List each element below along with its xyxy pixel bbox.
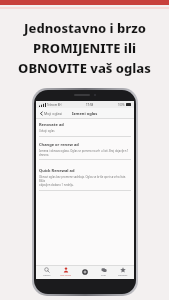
button[interactable]: Chat [94, 265, 113, 279]
staticText: OBNOVITE vaš oglas [18, 59, 151, 77]
staticText: Traženi [43, 274, 51, 277]
staticText: Omiljeno [118, 274, 128, 277]
staticText: Chat [101, 274, 106, 277]
staticText: Obnovi oglas bez promene sadržaja. Oglas… [39, 175, 131, 182]
button[interactable]: Search [38, 265, 56, 279]
staticText: 17:58 [86, 103, 94, 107]
button[interactable]: Change or renew ad [36, 139, 134, 162]
button[interactable]: Renovate ad [36, 119, 134, 139]
button[interactable]: Moji oglasi [39, 110, 64, 117]
staticText: Change or renew ad [39, 142, 79, 147]
staticText: Moji oglasi [60, 274, 72, 277]
staticText: Udvoji oglas [39, 129, 55, 133]
staticText: Renovate ad [39, 122, 64, 127]
staticText: Izmena i obnova oglasa. Oglas se pomera … [39, 149, 131, 156]
staticText: Moji oglasi [44, 111, 63, 116]
staticText: objavljen dodano 1 nedelju. [39, 183, 74, 187]
button[interactable]: Post ad [75, 265, 94, 279]
button[interactable]: Quick Renewal ad [36, 165, 134, 193]
staticText: 100% [118, 103, 125, 107]
staticText: Telecom BH [47, 103, 62, 107]
staticText: Jednostavno i brzo [24, 19, 146, 37]
button[interactable]: My ads [56, 265, 75, 279]
staticText: PROMIJENITE ili [33, 39, 136, 57]
staticText: Izmeni oglas [72, 111, 98, 116]
button[interactable]: Favorites [113, 265, 132, 279]
staticText: Quick Renewal ad [39, 168, 75, 173]
